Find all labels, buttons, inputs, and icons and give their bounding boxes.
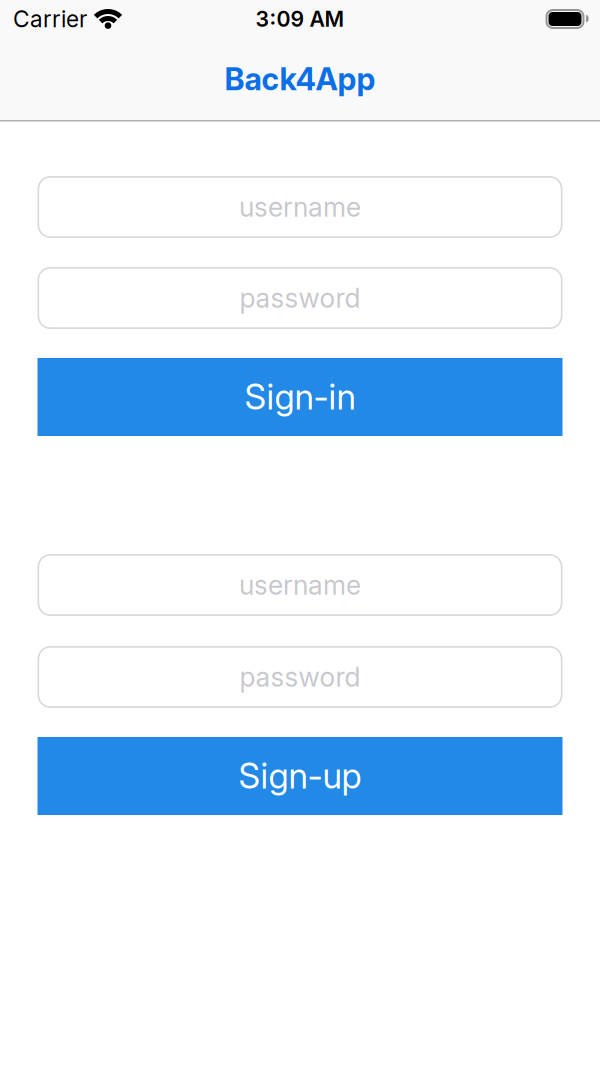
- button[interactable]: username: [37, 554, 562, 616]
- staticText: username: [239, 569, 361, 601]
- button[interactable]: Sign-in: [37, 358, 562, 436]
- button[interactable]: password: [37, 646, 562, 708]
- button[interactable]: Sign-up: [37, 737, 562, 815]
- staticText: username: [239, 191, 361, 223]
- staticText: Sign-in: [244, 376, 355, 418]
- staticText: password: [239, 282, 360, 314]
- staticText: 3:09 AM: [255, 6, 344, 32]
- button[interactable]: password: [37, 267, 562, 329]
- staticText: Back4App: [224, 60, 375, 97]
- staticText: Carrier: [13, 5, 87, 33]
- staticText: password: [239, 661, 360, 693]
- staticText: Sign-up: [238, 755, 361, 797]
- button[interactable]: username: [37, 176, 562, 238]
